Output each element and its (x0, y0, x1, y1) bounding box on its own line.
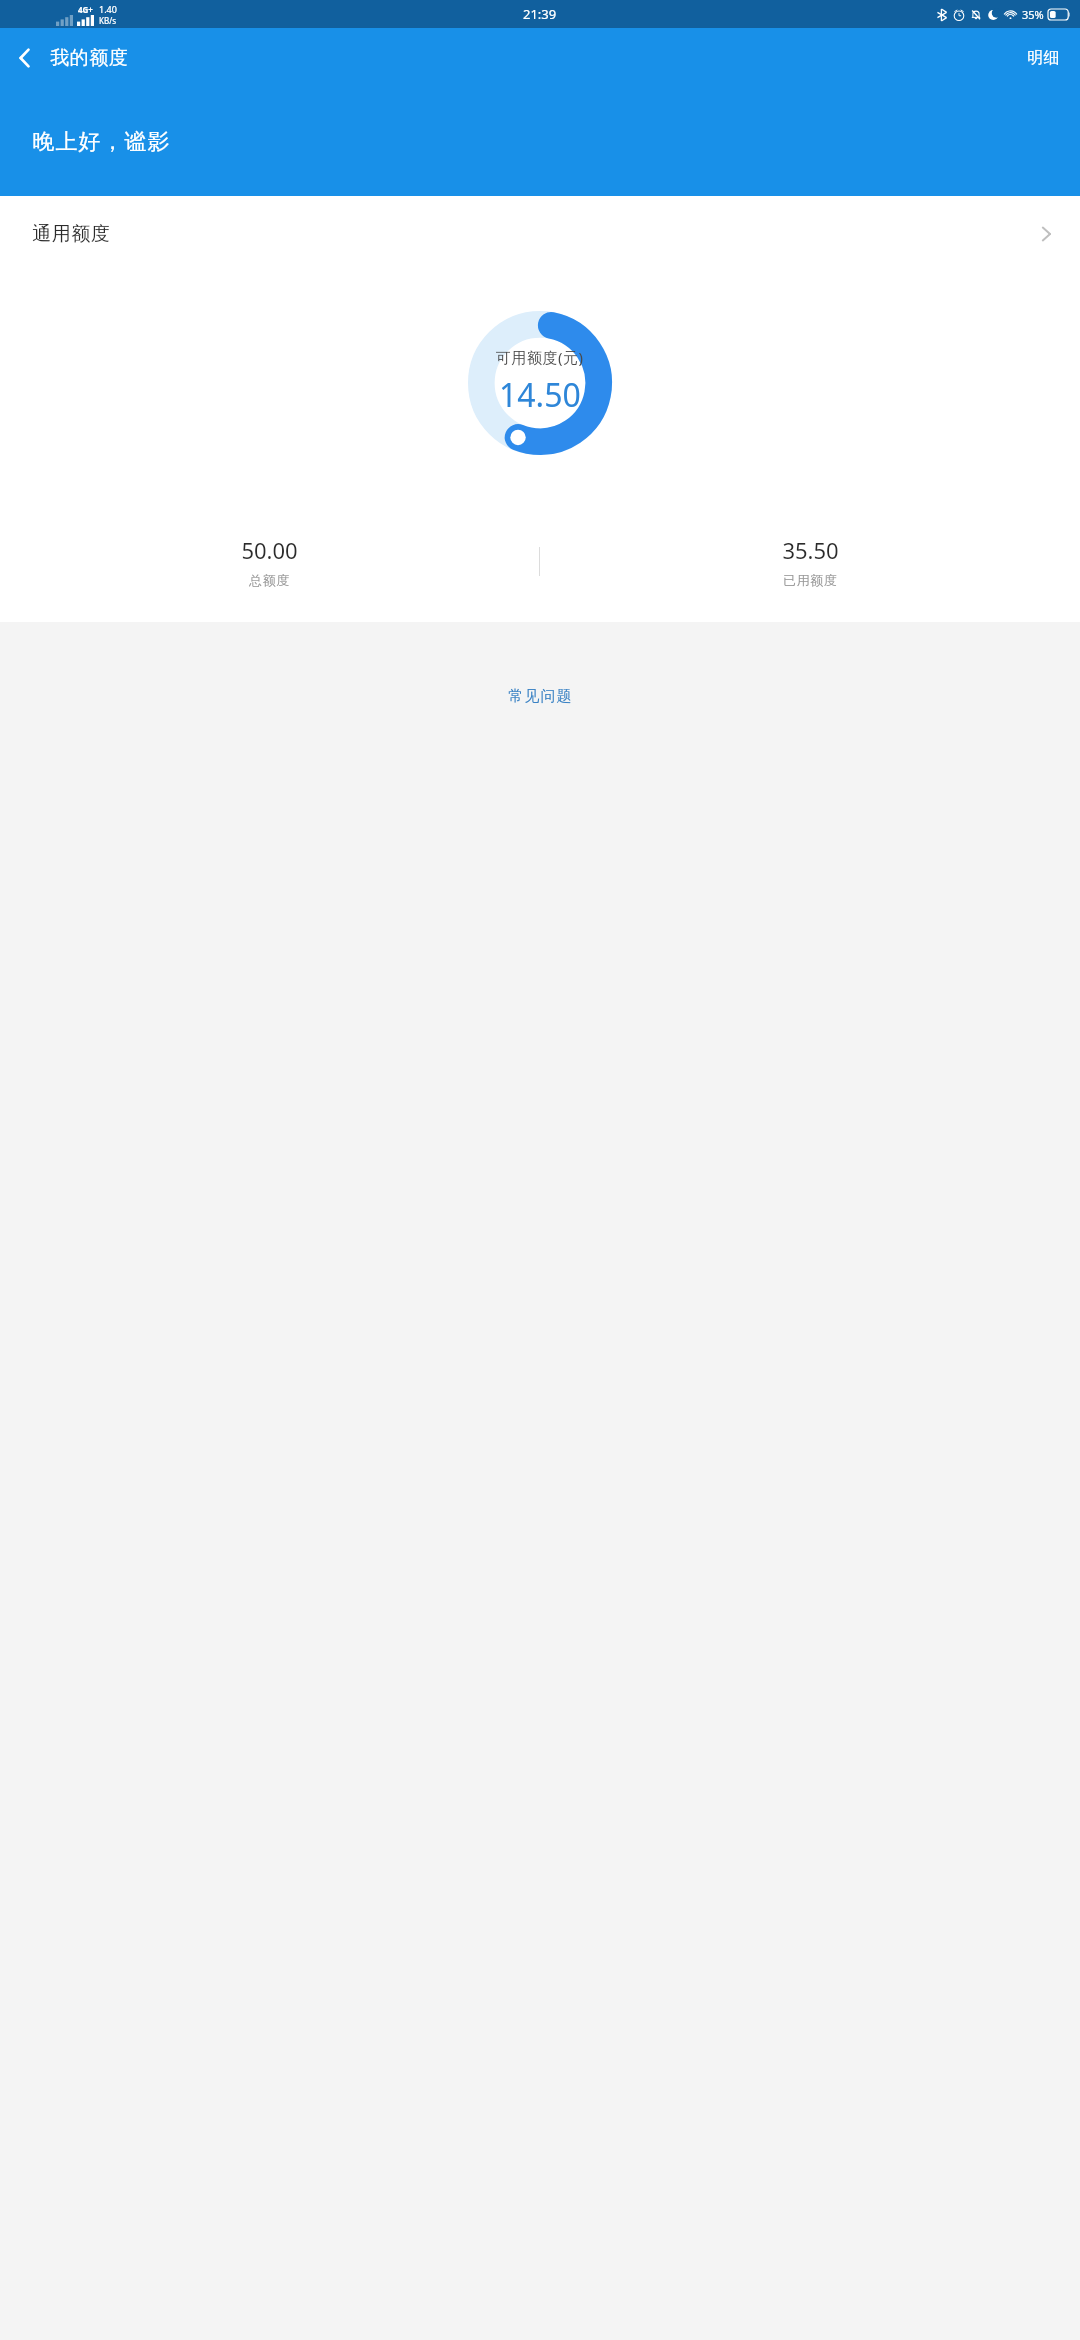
staticText: 明细 (1027, 48, 1060, 68)
staticText: 50.00 (241, 535, 298, 565)
staticText: 1.40 (99, 3, 117, 15)
staticText: 通用额度 (32, 222, 110, 246)
staticText: 已用额度 (783, 572, 837, 588)
button[interactable]: 常见问题 (0, 659, 1080, 733)
staticText: 35% (1022, 7, 1044, 22)
button[interactable]: Back (0, 37, 140, 79)
staticText: 21:39 (523, 5, 557, 23)
staticText: 35.50 (782, 535, 839, 565)
staticText: 总额度 (249, 572, 290, 588)
staticText: 可用额度(元) (496, 347, 584, 367)
button[interactable]: 明细 (1007, 38, 1080, 78)
staticText: KB/s (99, 15, 116, 26)
staticText: 我的额度 (50, 46, 128, 70)
other: Back (12, 45, 38, 71)
staticText: 4G+ (78, 4, 93, 15)
button[interactable]: 通用额度 (0, 196, 1080, 258)
staticText: 常见问题 (508, 687, 572, 706)
staticText: 晚上好，谧影 (32, 128, 170, 156)
staticText: 14.50 (499, 373, 581, 417)
